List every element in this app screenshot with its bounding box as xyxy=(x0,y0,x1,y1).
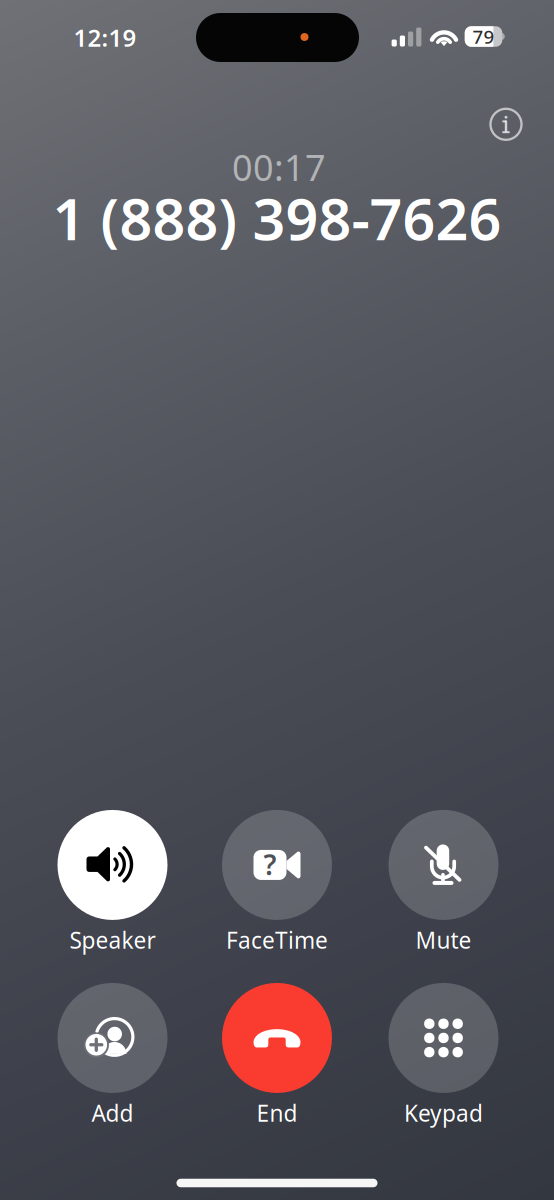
staticText: Add xyxy=(91,1098,133,1128)
button[interactable]: Add xyxy=(32,983,192,1128)
staticText: Keypad xyxy=(404,1098,483,1128)
staticText: Speaker xyxy=(69,925,155,955)
staticText: 00:17 xyxy=(232,143,326,191)
staticText: FaceTime xyxy=(226,925,328,955)
staticText: 79 xyxy=(472,24,494,49)
button[interactable]: Mute xyxy=(363,810,523,955)
staticText: Mute xyxy=(415,925,471,955)
staticText: 12:19 xyxy=(73,22,136,53)
button[interactable]: Keypad xyxy=(363,983,523,1128)
staticText: End xyxy=(256,1098,297,1128)
button[interactable]: End xyxy=(197,983,357,1128)
button[interactable]: ? xyxy=(197,810,357,955)
button[interactable]: Speaker xyxy=(32,810,192,955)
staticText: 1 (888) 398-7626 xyxy=(52,180,501,256)
staticText: ? xyxy=(263,846,276,883)
button[interactable]: Call details xyxy=(481,100,530,149)
